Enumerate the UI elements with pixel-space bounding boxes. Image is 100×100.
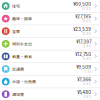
staticText: 特別な支出 [12,41,32,47]
button[interactable]: 水道・光熱費 [0,76,100,88]
staticText: ¥7,366 [77,77,91,82]
staticText: 2.9% [83,95,91,99]
staticText: ¥9,509 [76,65,91,70]
staticText: 12.8% [82,32,91,36]
staticText: 14.8% [82,19,91,23]
staticText: 通信費 [12,91,24,97]
staticText: 6.9% [83,57,91,61]
staticText: ¥23,539 [73,27,91,32]
staticText: 交通費 [12,66,24,72]
button[interactable]: 食費 [0,25,100,38]
staticText: 趣味・娯楽 [12,16,32,21]
button[interactable]: 教養・教育 [0,50,100,63]
staticText: ¥60,500 [73,2,91,7]
staticText: 住宅 [12,3,20,9]
button[interactable]: 趣味・娯楽 [0,13,100,25]
staticText: 4.0% [83,82,91,86]
staticText: ¥12,750 [75,52,91,57]
button[interactable]: 住宅 [0,0,100,13]
staticText: ¥27,195 [75,14,91,19]
staticText: 教養・教育 [12,53,32,59]
staticText: 水道・光熱費 [12,79,36,84]
staticText: 5.1% [84,70,91,73]
staticText: 食費 [12,28,20,34]
staticText: ¥5,480 [77,90,91,95]
staticText: ¥17,397 [76,39,91,45]
button[interactable]: 通信費 [0,88,100,100]
button[interactable]: 特別な支出 [0,38,100,50]
button[interactable]: 交通費 [0,63,100,76]
staticText: 32.9% [81,7,91,10]
staticText: 9.4% [83,44,91,48]
